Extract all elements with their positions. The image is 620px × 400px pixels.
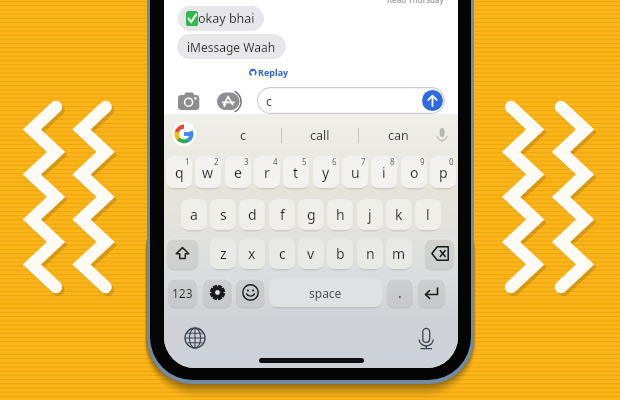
staticText: Read Thursday — [387, 0, 444, 5]
button[interactable]: f — [269, 199, 295, 230]
button[interactable]: w — [195, 156, 221, 188]
staticText: okay bhai — [198, 10, 255, 27]
button[interactable]: Shift — [166, 238, 199, 269]
staticText: 0 — [449, 156, 454, 167]
button[interactable]: . — [386, 278, 414, 307]
button[interactable]: Google — [172, 122, 196, 146]
staticText: e — [234, 163, 242, 182]
button[interactable]: call — [281, 117, 359, 153]
button[interactable]: App Store — [217, 92, 244, 111]
button[interactable]: n — [357, 238, 383, 269]
staticText: r — [264, 163, 270, 182]
staticText: x — [248, 244, 256, 263]
button[interactable]: 123 — [167, 278, 198, 307]
staticText: a — [190, 205, 198, 224]
button[interactable]: can — [359, 117, 437, 153]
staticText: o — [410, 163, 419, 182]
button[interactable]: Voice input — [433, 126, 451, 144]
staticText: can — [388, 127, 409, 144]
staticText: g — [307, 205, 316, 224]
staticText: call — [310, 127, 330, 144]
button[interactable]: c — [204, 117, 282, 153]
button[interactable]: x — [239, 238, 265, 269]
button[interactable]: okay bhai — [178, 6, 264, 31]
button[interactable]: t — [283, 156, 309, 188]
staticText: 3 — [244, 156, 249, 167]
staticText: 6 — [332, 156, 337, 167]
staticText: y — [322, 163, 330, 182]
button[interactable]: c — [257, 87, 445, 114]
staticText: s — [220, 205, 227, 224]
button[interactable]: q — [166, 156, 192, 188]
button[interactable]: o — [401, 156, 427, 188]
button[interactable]: j — [357, 199, 383, 230]
staticText: n — [366, 244, 375, 263]
button[interactable]: Send — [422, 90, 443, 111]
staticText: l — [426, 205, 430, 224]
button[interactable]: c — [269, 238, 295, 269]
button[interactable]: r — [254, 156, 280, 188]
staticText: i — [382, 163, 386, 182]
staticText: u — [351, 163, 360, 182]
button[interactable]: Change language — [184, 327, 206, 349]
staticText: . — [398, 283, 402, 302]
button[interactable]: a — [181, 199, 207, 230]
staticText: 9 — [420, 156, 425, 167]
button[interactable]: Camera — [178, 92, 200, 111]
staticText: c — [266, 93, 272, 109]
staticText: 123 — [172, 285, 193, 301]
staticText: z — [220, 244, 227, 263]
button[interactable]: e — [225, 156, 251, 188]
button[interactable]: y — [313, 156, 339, 188]
staticText: c — [240, 127, 247, 144]
button[interactable]: k — [386, 199, 412, 230]
button[interactable]: d — [239, 199, 265, 230]
staticText: f — [280, 205, 285, 224]
staticText: b — [336, 244, 345, 263]
button[interactable]: h — [327, 199, 353, 230]
button[interactable]: Enter — [417, 278, 446, 307]
staticText: 2 — [214, 156, 219, 167]
staticText: 8 — [390, 156, 395, 167]
staticText: k — [395, 205, 403, 224]
button[interactable]: s — [210, 199, 236, 230]
button[interactable]: iMessage Waah — [177, 34, 286, 59]
button[interactable]: Voice typing — [418, 327, 441, 350]
staticText: h — [336, 205, 345, 224]
staticText: t — [293, 163, 299, 182]
staticText: 4 — [273, 156, 278, 167]
button[interactable]: space — [269, 278, 382, 307]
staticText: v — [307, 244, 315, 263]
staticText: p — [439, 163, 448, 182]
staticText: 7 — [361, 156, 366, 167]
button[interactable]: b — [327, 238, 353, 269]
button[interactable]: Settings — [202, 278, 233, 307]
staticText: c — [279, 244, 286, 263]
staticText: 1 — [185, 156, 190, 167]
staticText: space — [309, 285, 342, 301]
button[interactable]: g — [298, 199, 324, 230]
button[interactable]: u — [342, 156, 368, 188]
button[interactable]: m — [386, 238, 412, 269]
button[interactable]: Backspace — [424, 238, 455, 269]
button[interactable]: z — [210, 238, 236, 269]
button[interactable]: i — [371, 156, 397, 188]
staticText: m — [392, 244, 406, 263]
button[interactable]: Replay — [249, 66, 289, 78]
button[interactable]: v — [298, 238, 324, 269]
staticText: 5 — [302, 156, 307, 167]
button[interactable]: p — [430, 156, 456, 188]
staticText: iMessage Waah — [187, 39, 276, 55]
button[interactable]: l — [415, 199, 441, 230]
staticText: j — [368, 205, 372, 224]
staticText: Replay — [258, 66, 289, 78]
staticText: q — [175, 163, 184, 182]
staticText: d — [248, 205, 257, 224]
button[interactable]: Emoji — [235, 278, 265, 307]
staticText: w — [202, 163, 214, 182]
